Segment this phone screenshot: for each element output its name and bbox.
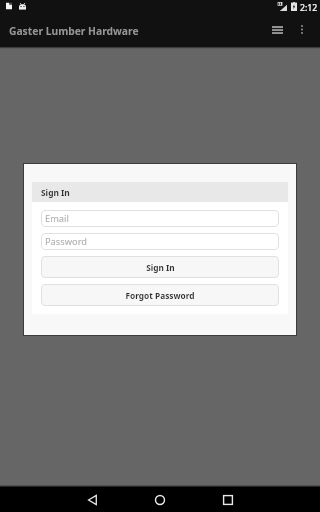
button[interactable]: Sign In xyxy=(41,256,279,278)
button[interactable]: Forgot Password xyxy=(41,284,279,306)
staticText: Password xyxy=(45,235,88,248)
staticText: Sign In xyxy=(146,262,175,273)
button[interactable]: More options xyxy=(290,14,314,45)
button[interactable]: Back xyxy=(72,487,112,512)
button[interactable]: Email xyxy=(41,210,279,227)
button[interactable]: Home xyxy=(140,487,180,512)
staticText: Forgot Password xyxy=(125,290,195,301)
staticText: Email xyxy=(45,212,69,225)
button[interactable]: Menu xyxy=(263,14,291,45)
button[interactable]: Recent apps xyxy=(208,487,248,512)
staticText: Gaster Lumber Hardware xyxy=(9,24,139,38)
staticText: 2:12 xyxy=(300,2,318,14)
button[interactable]: Password xyxy=(41,233,279,250)
staticText: Sign In xyxy=(41,187,70,198)
